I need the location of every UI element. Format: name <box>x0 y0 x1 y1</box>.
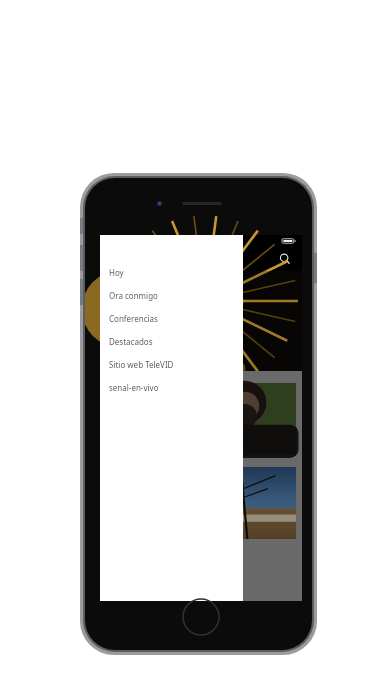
button[interactable]: Conferencias <box>100 307 243 330</box>
button[interactable]: Destacados <box>100 330 243 353</box>
staticText: senal-en-vivo <box>109 382 159 393</box>
staticText: Sitio web TeleVID <box>109 359 174 370</box>
button[interactable]: senal-en-vivo <box>100 376 243 399</box>
button[interactable]: Ora conmigo <box>100 284 243 307</box>
button[interactable]: Search <box>276 250 294 268</box>
button[interactable]: O <box>106 383 296 455</box>
button[interactable]: Hoy <box>100 261 243 284</box>
staticText: Hoy <box>109 267 124 278</box>
staticText: Ora conmigo <box>109 290 158 301</box>
staticText: Conferencias <box>109 313 158 324</box>
button[interactable]: Sitio web TeleVID <box>100 353 243 376</box>
button[interactable]: Home <box>182 598 220 636</box>
staticText: Destacados <box>109 336 153 347</box>
button[interactable]: O <box>106 467 296 539</box>
